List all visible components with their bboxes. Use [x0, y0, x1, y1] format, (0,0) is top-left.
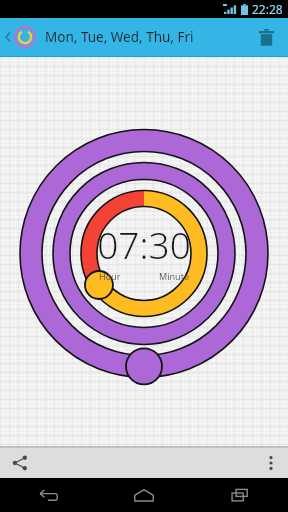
staticText: Hour	[99, 270, 144, 282]
button[interactable]: Share	[0, 448, 40, 478]
button[interactable]: More options	[254, 448, 288, 478]
button[interactable]: Home	[96, 478, 192, 512]
staticText: 22:28	[252, 1, 283, 17]
staticText: 07:30	[97, 219, 191, 269]
button[interactable]: Delete alarm	[244, 18, 288, 56]
button[interactable]: Alarm time dial 07:30	[0, 57, 288, 446]
staticText: Minute	[144, 270, 189, 282]
button[interactable]: Up	[0, 18, 244, 56]
other: Up	[4, 29, 12, 45]
button[interactable]: Back	[0, 478, 96, 512]
other: Delete	[259, 29, 274, 46]
staticText: Mon, Tue, Wed, Thu, Fri	[45, 28, 194, 46]
button[interactable]: Recent apps	[192, 478, 288, 512]
